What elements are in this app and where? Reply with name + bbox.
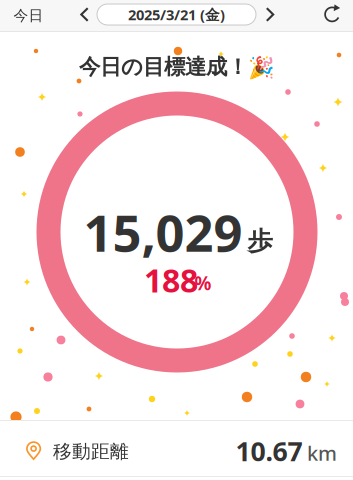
button[interactable]: Previous day bbox=[71, 0, 97, 30]
staticText: 今日の目標達成！🎉 bbox=[79, 54, 275, 80]
staticText: 15,029 bbox=[83, 198, 242, 266]
staticText: 188 bbox=[144, 259, 198, 301]
staticText: 今日 bbox=[13, 6, 43, 24]
button[interactable]: Refresh bbox=[315, 0, 349, 30]
button[interactable]: 移動距離 bbox=[0, 421, 353, 477]
button[interactable]: 今日 bbox=[3, 0, 53, 31]
button[interactable]: Next day bbox=[257, 0, 283, 30]
staticText: km bbox=[307, 440, 337, 466]
button[interactable]: 2025/3/21 (金) bbox=[97, 4, 256, 25]
staticText: % bbox=[194, 271, 211, 295]
staticText: 2025/3/21 (金) bbox=[128, 5, 225, 24]
staticText: 歩 bbox=[247, 225, 272, 256]
staticText: 移動距離 bbox=[53, 440, 129, 463]
staticText: 10.67 bbox=[235, 433, 302, 469]
